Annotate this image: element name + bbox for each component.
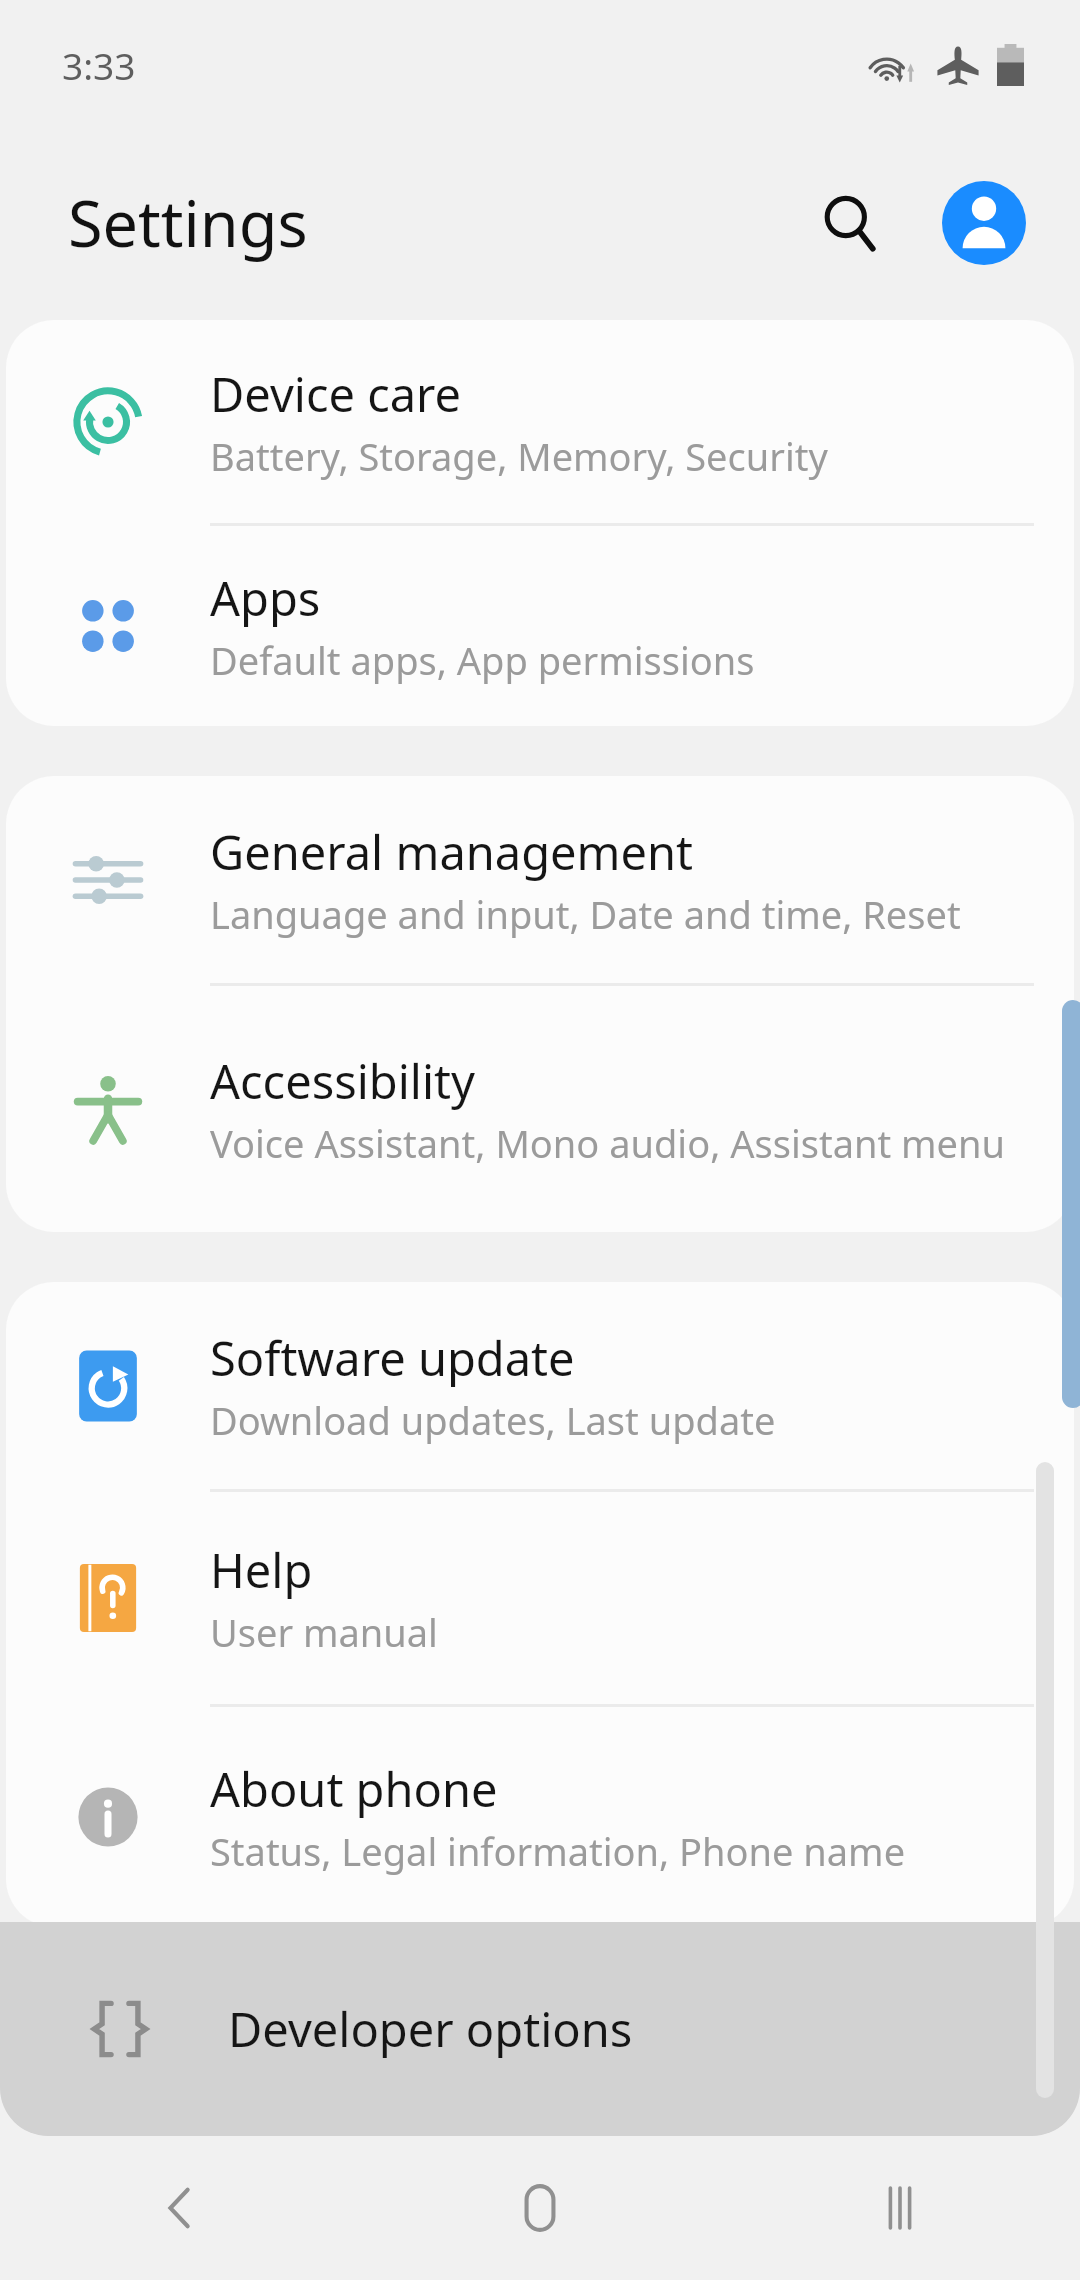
staticText: Battery, Storage, Memory, Security <box>210 430 828 482</box>
button[interactable]: Software update <box>6 1282 1074 1489</box>
button[interactable]: Device care <box>6 320 1074 523</box>
button[interactable]: General management <box>6 776 1074 983</box>
staticText: User manual <box>210 1606 438 1658</box>
staticText: Language and input, Date and time, Reset <box>210 888 961 940</box>
staticText: 3:33 <box>62 40 136 90</box>
button[interactable]: Back <box>0 2135 360 2280</box>
button[interactable]: Developer options <box>0 1922 1080 2136</box>
staticText: Help <box>210 1538 313 1602</box>
button[interactable]: About phone <box>6 1707 1074 1927</box>
staticText: Apps <box>210 566 321 630</box>
staticText: Voice Assistant, Mono audio, Assistant m… <box>210 1117 1005 1169</box>
button[interactable]: Help <box>6 1492 1074 1704</box>
staticText: Default apps, App permissions <box>210 634 755 686</box>
staticText: Software update <box>210 1326 575 1390</box>
staticText: About phone <box>210 1757 498 1821</box>
staticText: Download updates, Last update <box>210 1394 776 1446</box>
staticText: Settings <box>68 180 308 266</box>
button[interactable]: Search <box>800 173 900 273</box>
staticText: General management <box>210 820 694 884</box>
button[interactable]: Home <box>360 2135 720 2280</box>
button[interactable]: Apps <box>6 526 1074 726</box>
staticText: Developer options <box>228 1997 633 2061</box>
staticText: Status, Legal information, Phone name <box>210 1825 906 1877</box>
staticText: Device care <box>210 362 462 426</box>
button[interactable]: Accessibility <box>6 986 1074 1232</box>
button[interactable]: Recents <box>720 2135 1080 2280</box>
staticText: Accessibility <box>210 1049 476 1113</box>
button[interactable]: Account <box>934 173 1034 273</box>
